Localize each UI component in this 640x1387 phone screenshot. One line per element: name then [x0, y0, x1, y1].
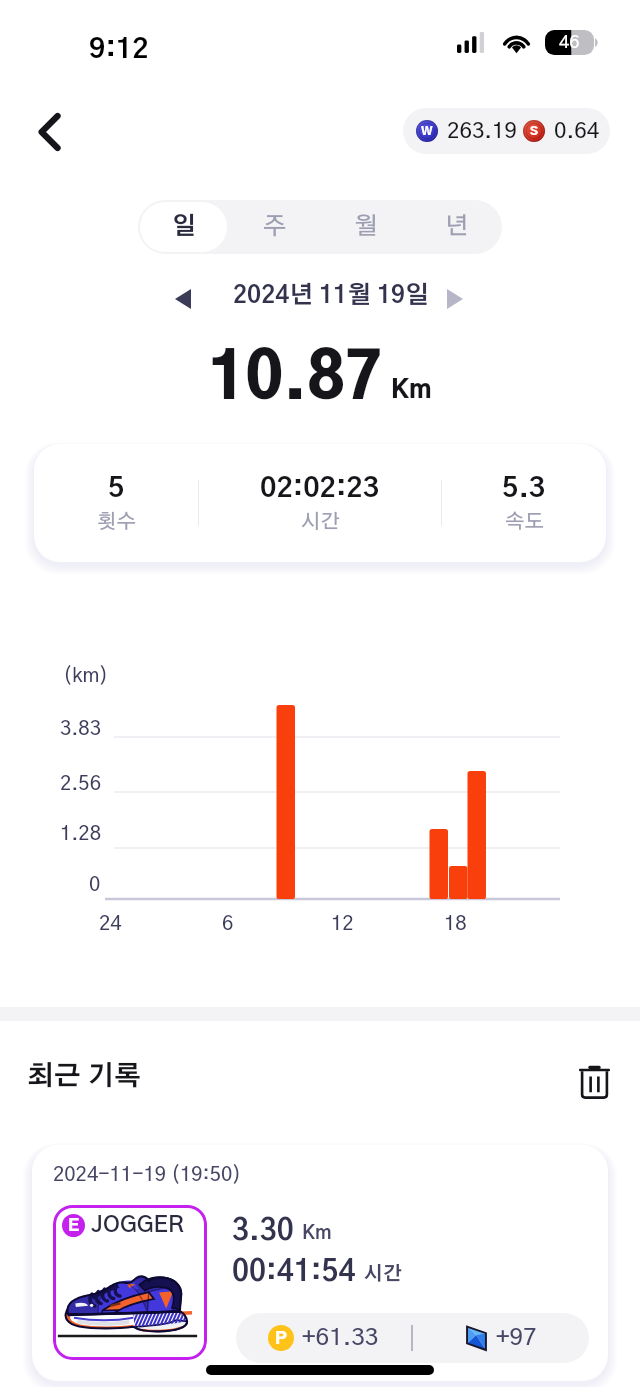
staticText: 3.83: [60, 719, 101, 739]
button[interactable]: 일: [140, 202, 227, 252]
button[interactable]: 월: [322, 202, 409, 252]
button[interactable]: 주: [231, 202, 318, 252]
staticText: 263.19: [447, 120, 517, 142]
staticText: 02:02:23: [260, 475, 380, 503]
staticText: S: [530, 125, 538, 137]
staticText: 최근 기록: [27, 1063, 142, 1090]
staticText: P: [275, 1330, 287, 1347]
staticText: Km: [302, 1224, 332, 1243]
staticText: 월: [354, 215, 378, 239]
button[interactable]: W: [403, 108, 610, 154]
staticText: JOGGER: [91, 1214, 184, 1237]
staticText: 46: [559, 34, 580, 52]
button[interactable]: 년: [413, 202, 500, 252]
staticText: Km: [391, 378, 432, 403]
button[interactable]: Previous day: [161, 277, 205, 321]
staticText: 시간: [364, 1265, 402, 1284]
staticText: +97: [496, 1326, 537, 1350]
staticText: 년: [445, 215, 469, 239]
button[interactable]: P: [236, 1313, 589, 1363]
staticText: 9:12: [89, 36, 149, 64]
staticText: 24: [99, 914, 122, 934]
staticText: 1.28: [60, 824, 101, 844]
button[interactable]: 2024-11-19 (19:50): [32, 1145, 608, 1381]
staticText: 0: [89, 875, 101, 895]
button[interactable]: Back: [20, 102, 80, 162]
staticText: 2024년 11월 19일: [233, 284, 429, 308]
staticText: +61.33: [302, 1326, 379, 1350]
button[interactable]: E: [53, 1205, 207, 1360]
staticText: E: [68, 1217, 80, 1234]
staticText: 횟수: [97, 512, 136, 532]
staticText: 3.30: [232, 1217, 294, 1246]
staticText: 5.3: [502, 475, 546, 503]
staticText: 2024-11-19 (19:50): [53, 1165, 242, 1185]
button[interactable]: Delete records: [568, 1055, 620, 1107]
staticText: 일: [172, 215, 196, 239]
staticText: W: [421, 125, 433, 137]
staticText: (km): [63, 666, 109, 686]
staticText: 00:41:54: [232, 1258, 356, 1287]
staticText: 12: [331, 914, 354, 934]
staticText: 18: [444, 914, 467, 934]
staticText: 0.64: [554, 120, 600, 142]
staticText: 속도: [505, 512, 544, 532]
staticText: 2.56: [60, 774, 101, 794]
button[interactable]: Next day: [433, 277, 477, 321]
staticText: 시간: [301, 512, 340, 532]
staticText: 6: [222, 914, 234, 934]
staticText: 5: [108, 475, 125, 503]
staticText: 주: [263, 215, 287, 239]
staticText: 10.87: [208, 350, 383, 412]
